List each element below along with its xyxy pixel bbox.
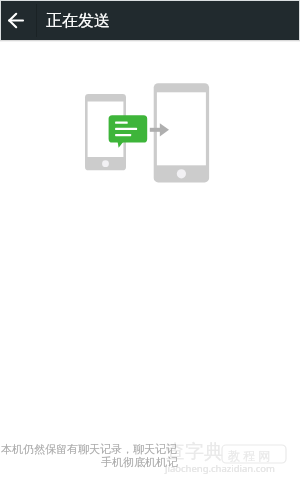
staticText: 本机仍然保留有聊天记录，聊天记记: [1, 442, 177, 456]
staticText: 教 程 网: [228, 447, 271, 463]
staticText: jiaocheng.chazidian.com: [165, 462, 275, 475]
staticText: 查字典: [166, 440, 223, 464]
staticText: 手机彻底机机记: [101, 455, 178, 469]
button[interactable]: Back: [1, 1, 37, 40]
staticText: 正在发送: [46, 11, 110, 31]
